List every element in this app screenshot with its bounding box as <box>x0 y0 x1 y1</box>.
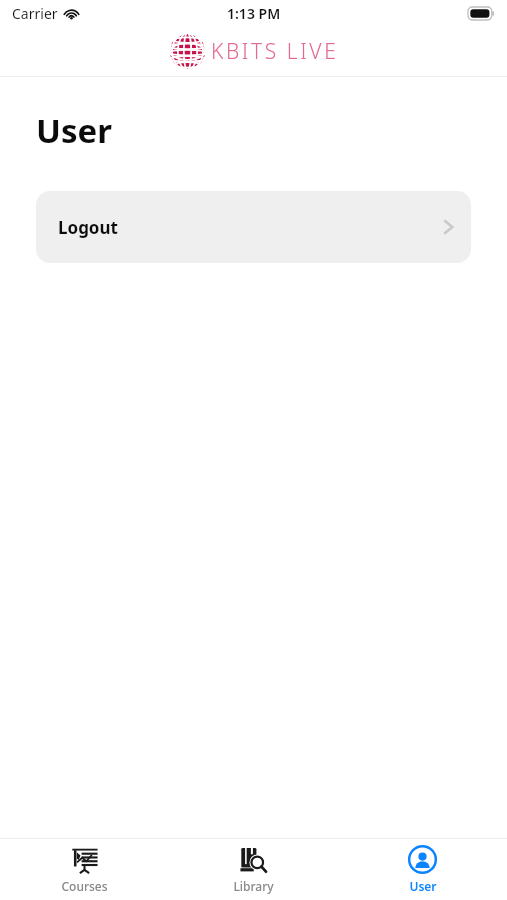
staticText: User <box>36 108 112 153</box>
staticText: Logout <box>58 216 118 239</box>
staticText: Carrier <box>12 4 58 23</box>
button[interactable]: Library <box>169 839 338 900</box>
staticText: 1:13 PM <box>227 4 281 23</box>
button[interactable]: Courses <box>0 839 169 900</box>
staticText: KBITS LIVE <box>211 37 339 66</box>
button[interactable]: User <box>338 839 507 900</box>
staticText: Courses <box>61 878 108 894</box>
staticText: User <box>409 878 437 894</box>
button[interactable]: Logout <box>36 191 471 263</box>
staticText: Library <box>233 878 274 894</box>
